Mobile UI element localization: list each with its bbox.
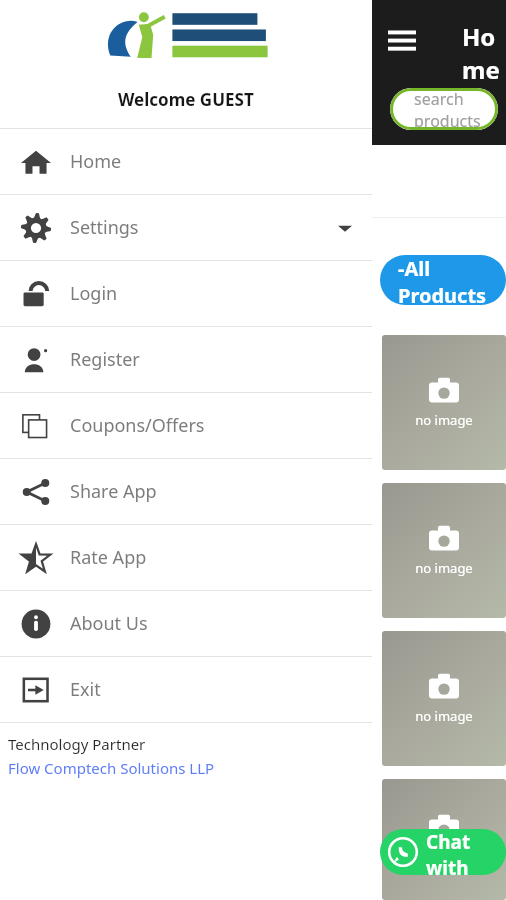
button[interactable]: Settings xyxy=(0,195,372,260)
button[interactable]: Open navigation menu xyxy=(388,26,416,54)
staticText: -All Products xyxy=(398,255,488,305)
button[interactable]: Register xyxy=(0,327,372,392)
staticText: Login xyxy=(70,281,118,306)
button[interactable]: Login xyxy=(0,261,372,326)
button[interactable]: Technology Partner xyxy=(0,723,372,778)
staticText: Register xyxy=(70,347,140,372)
staticText: no image xyxy=(415,848,473,866)
staticText: Home xyxy=(462,20,506,86)
button[interactable]: About Us xyxy=(0,591,372,656)
staticText: Home xyxy=(70,149,122,174)
staticText: Rate App xyxy=(70,545,147,570)
button[interactable]: -All Products xyxy=(380,255,506,305)
button[interactable]: Home xyxy=(0,129,372,194)
staticText: About Us xyxy=(70,611,148,636)
staticText: no image xyxy=(415,707,473,725)
staticText: Settings xyxy=(70,215,139,240)
button[interactable]: no image xyxy=(382,335,506,470)
staticText: Chat with us xyxy=(426,829,490,875)
button[interactable]: no image xyxy=(382,631,506,766)
staticText: Technology Partner xyxy=(8,734,146,754)
button[interactable]: Share App xyxy=(0,459,372,524)
button[interactable]: Rate App xyxy=(0,525,372,590)
staticText: Flow Comptech Solutions LLP xyxy=(8,758,215,778)
staticText: no image xyxy=(415,411,473,429)
button[interactable]: no image xyxy=(382,483,506,618)
button[interactable]: no image xyxy=(382,779,506,900)
staticText: Share App xyxy=(70,479,157,504)
button[interactable]: search products xyxy=(390,88,498,130)
button[interactable]: Exit xyxy=(0,657,372,722)
staticText: Welcome GUEST xyxy=(118,88,254,111)
button[interactable]: Chat with us xyxy=(380,829,506,875)
staticText: search products xyxy=(414,88,498,130)
button[interactable]: Coupons/Offers xyxy=(0,393,372,458)
staticText: Coupons/Offers xyxy=(70,413,205,438)
staticText: Exit xyxy=(70,677,101,702)
staticText: no image xyxy=(415,559,473,577)
